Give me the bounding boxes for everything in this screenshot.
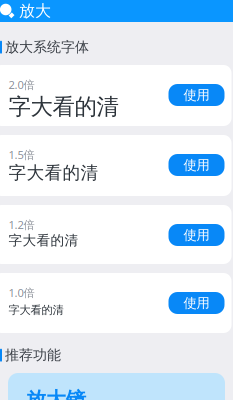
button[interactable]: 使用 bbox=[168, 84, 224, 106]
staticText: 字大看的清 bbox=[8, 232, 78, 249]
staticText: 字大看的清 bbox=[8, 93, 118, 121]
staticText: 放大镜 bbox=[26, 387, 86, 400]
staticText: 1.5倍 bbox=[8, 147, 34, 162]
staticText: 字大看的清 bbox=[8, 162, 98, 184]
staticText: 使用 bbox=[183, 157, 209, 173]
staticText: 字大看的清 bbox=[8, 303, 63, 317]
staticText: 1.0倍 bbox=[8, 285, 34, 300]
button[interactable]: 使用 bbox=[168, 292, 224, 314]
staticText: 使用 bbox=[183, 227, 209, 243]
button[interactable]: 使用 bbox=[168, 154, 224, 176]
staticText: 放大 bbox=[19, 1, 51, 21]
staticText: 使用 bbox=[183, 87, 209, 103]
staticText: 1.2倍 bbox=[8, 217, 34, 232]
staticText: 推荐功能 bbox=[5, 346, 61, 364]
staticText: 使用 bbox=[183, 295, 209, 311]
button[interactable]: 放大镜 bbox=[0, 373, 233, 400]
staticText: 2.0倍 bbox=[8, 77, 34, 92]
button[interactable]: 使用 bbox=[168, 224, 224, 246]
staticText: 放大系统字体 bbox=[5, 38, 89, 56]
